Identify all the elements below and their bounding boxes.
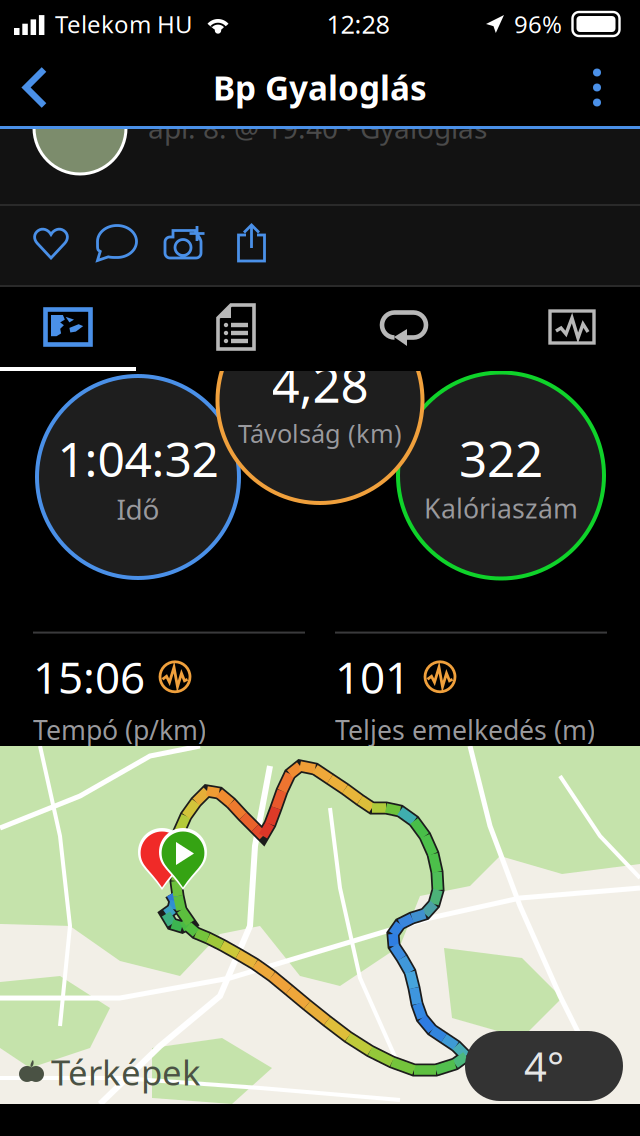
button[interactable]: Details <box>152 290 320 364</box>
staticText: 96% <box>514 8 562 40</box>
staticText: 15:06 <box>33 648 145 706</box>
staticText: Idő <box>116 490 159 527</box>
staticText: 101 <box>335 648 410 706</box>
staticText: Bp Gyaloglás <box>213 65 427 110</box>
staticText: 12:28 <box>326 7 389 41</box>
button[interactable]: Like <box>19 207 84 284</box>
staticText: 1:04:32 <box>57 426 218 490</box>
staticText: Térképek <box>51 1049 201 1095</box>
staticText: 4° <box>524 1039 564 1092</box>
button[interactable]: More options <box>565 63 640 111</box>
staticText: 322 <box>459 425 543 490</box>
staticText: Teljes emelkedés (m) <box>335 712 595 747</box>
staticText: Telekom HU <box>55 8 193 40</box>
button[interactable]: Laps <box>320 290 488 364</box>
staticText: Tempó (p/km) <box>33 712 206 747</box>
button[interactable]: Heart rate <box>488 290 640 364</box>
button[interactable]: Add photo <box>151 206 220 285</box>
staticText: 4,28 <box>271 351 368 416</box>
staticText: Távolság (km) <box>238 416 402 450</box>
staticText: Kalóriaszám <box>424 490 578 526</box>
button[interactable]: Comment <box>84 206 151 285</box>
staticText: ápr. 8. @ 19:40 · Gyaloglás <box>148 109 487 147</box>
button[interactable]: Map <box>0 290 152 364</box>
button[interactable]: Share <box>220 206 281 285</box>
button[interactable]: Back <box>0 51 64 123</box>
